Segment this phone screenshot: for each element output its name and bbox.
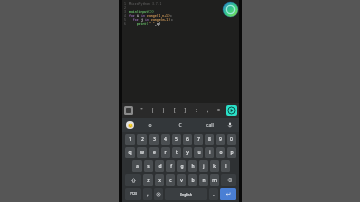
button[interactable]: r [161, 147, 170, 158]
button[interactable]: . [209, 188, 218, 200]
staticText: range(m-1) [151, 18, 171, 22]
staticText: 8 [208, 136, 211, 143]
button[interactable]: 1 [125, 134, 135, 145]
button[interactable]: g [177, 160, 186, 172]
button[interactable]: = [213, 103, 224, 118]
button[interactable]: 4 [161, 134, 170, 145]
button[interactable]: o [216, 147, 225, 158]
staticText: r [164, 149, 167, 156]
button[interactable]: d [155, 160, 164, 172]
button[interactable]: s [144, 160, 153, 172]
button[interactable]: e [149, 147, 159, 158]
button[interactable]: l [221, 160, 230, 172]
button[interactable]: C [165, 118, 195, 132]
button[interactable]: " [136, 103, 147, 118]
button[interactable]: 7 [194, 134, 203, 145]
staticText: e [153, 149, 156, 156]
button[interactable]: m [210, 174, 219, 186]
button[interactable]: c [166, 174, 175, 186]
button[interactable]: f [166, 160, 175, 172]
staticText: m [212, 177, 217, 184]
button[interactable]: Emoji suggestion [126, 121, 134, 129]
button[interactable]: ] [180, 103, 191, 118]
button[interactable]: , [143, 188, 152, 200]
button[interactable]: App logo [222, 1, 239, 18]
staticText: print( [129, 22, 149, 26]
button[interactable]: Settings [154, 188, 163, 200]
button[interactable]: [ [169, 103, 180, 118]
button[interactable]: h [188, 160, 197, 172]
staticText: i [209, 149, 211, 156]
staticText: 3 [124, 10, 129, 14]
button[interactable]: q [125, 147, 135, 158]
staticText: , [147, 191, 149, 198]
staticText: for [129, 18, 141, 22]
staticText: f [170, 163, 172, 170]
staticText: 1 [129, 136, 132, 143]
button[interactable]: v [177, 174, 186, 186]
button[interactable]: b [188, 174, 197, 186]
button[interactable]: 3 [149, 134, 159, 145]
button[interactable]: i [205, 147, 214, 158]
button[interactable]: w [137, 147, 147, 158]
staticText: 4 [164, 136, 167, 143]
button[interactable]: o [134, 118, 165, 132]
button[interactable]: z [143, 174, 153, 186]
button[interactable]: ?123 [125, 188, 141, 200]
staticText: 6 [124, 22, 129, 26]
button[interactable]: call [195, 118, 225, 132]
staticText: 4 [124, 14, 129, 18]
staticText: 1 [124, 2, 129, 6]
staticText: English [180, 192, 192, 197]
button[interactable]: Backspace [221, 174, 236, 186]
staticText: g [180, 163, 184, 170]
button[interactable]: Shift [125, 174, 141, 186]
staticText: call [206, 122, 214, 129]
button[interactable]: 5 [172, 134, 181, 145]
button[interactable]: English [165, 188, 207, 200]
staticText: b [191, 177, 195, 184]
staticText: z [147, 177, 150, 184]
staticText: : [170, 14, 172, 18]
button[interactable]: ) [158, 103, 169, 118]
staticText: h [191, 163, 195, 170]
staticText: o [148, 122, 152, 129]
button[interactable]: a [132, 160, 142, 172]
button[interactable]: k [210, 160, 219, 172]
button[interactable]: 8 [205, 134, 214, 145]
button[interactable]: ( [147, 103, 158, 118]
staticText: l [225, 163, 227, 170]
staticText: w [140, 149, 144, 156]
staticText: in [145, 18, 151, 22]
button[interactable]: t [172, 147, 181, 158]
button[interactable]: Enter [220, 188, 236, 200]
button[interactable]: : [191, 103, 202, 118]
button[interactable]: u [194, 147, 203, 158]
button[interactable]: y [183, 147, 192, 158]
staticText: : [195, 107, 199, 114]
staticText: 🙂 [128, 123, 133, 128]
staticText: for [129, 14, 137, 18]
button[interactable]: Toggle keyboard [124, 106, 133, 115]
button[interactable]: x [155, 174, 164, 186]
staticText: 0 [230, 136, 233, 143]
button[interactable]: Voice input [225, 118, 235, 132]
button[interactable]: 6 [183, 134, 192, 145]
staticText: 5 [175, 136, 178, 143]
staticText: c [169, 177, 172, 184]
button[interactable]: n [199, 174, 208, 186]
button[interactable]: p [227, 147, 236, 158]
button[interactable]: , [202, 103, 213, 118]
staticText: t [176, 149, 178, 156]
button[interactable]: 1 [122, 0, 239, 103]
staticText: 6 [186, 136, 189, 143]
button[interactable]: 0 [227, 134, 236, 145]
staticText: 2 [141, 136, 144, 143]
staticText: 7 [197, 136, 200, 143]
button[interactable]: j [199, 160, 208, 172]
staticText: p [230, 149, 234, 156]
staticText: range(1,n+1) [147, 14, 170, 18]
button[interactable]: Run [226, 105, 237, 116]
button[interactable]: 2 [137, 134, 147, 145]
button[interactable]: 9 [216, 134, 225, 145]
